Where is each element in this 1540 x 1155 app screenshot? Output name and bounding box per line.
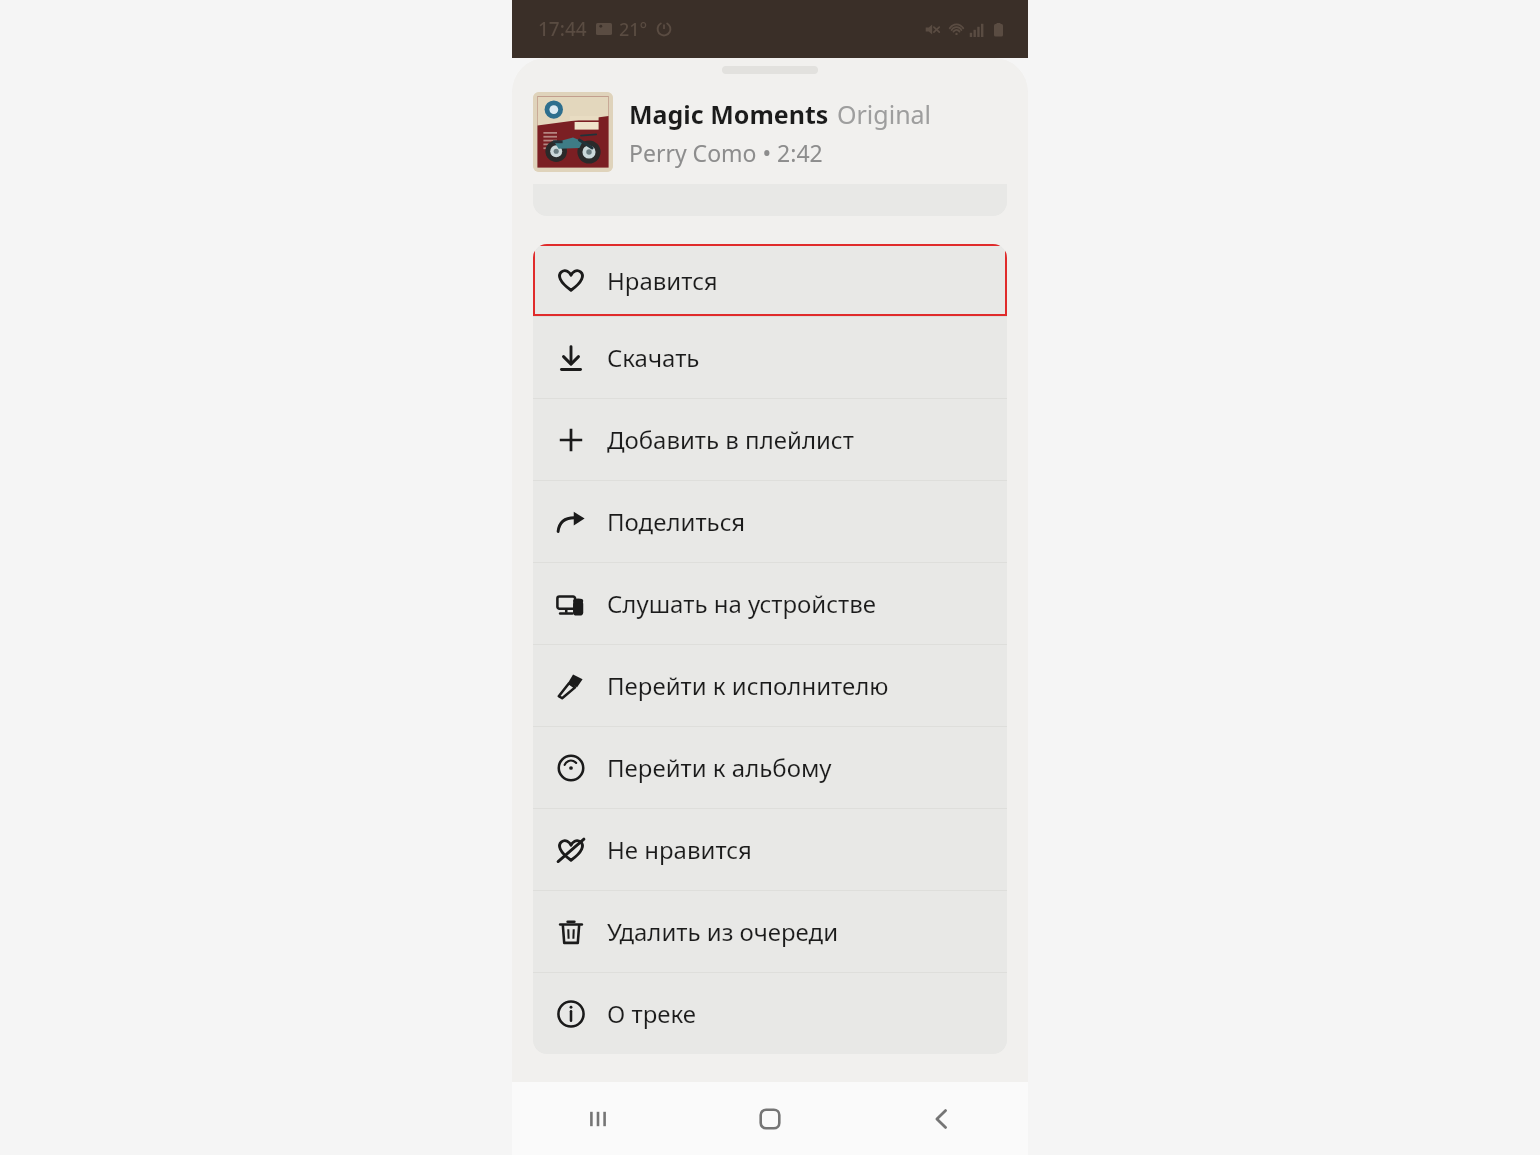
staticText: Magic Moments (629, 97, 829, 131)
staticText: Поделиться (607, 505, 746, 538)
button[interactable]: Скачать (533, 317, 1007, 398)
staticText: Перейти к исполнителю (607, 669, 889, 702)
staticText: 21° (619, 17, 648, 42)
button[interactable]: Поделиться (533, 481, 1007, 562)
staticText: Нравится (607, 264, 718, 297)
button[interactable]: Recents (512, 1082, 684, 1155)
staticText: О треке (607, 997, 696, 1030)
button[interactable]: Перейти к альбому (533, 727, 1007, 808)
staticText: Скачать (607, 341, 700, 374)
staticText: Original (837, 97, 932, 131)
staticText: Удалить из очереди (607, 915, 839, 948)
button[interactable]: Слушать на устройстве (533, 563, 1007, 644)
button[interactable]: О треке (533, 973, 1007, 1054)
button[interactable]: Перейти к исполнителю (533, 645, 1007, 726)
button[interactable]: Удалить из очереди (533, 891, 1007, 972)
staticText: Добавить в плейлист (607, 423, 854, 456)
staticText: Perry Como • 2:42 (629, 137, 823, 168)
staticText: Не нравится (607, 833, 752, 866)
button[interactable]: Добавить в плейлист (533, 399, 1007, 480)
staticText: Перейти к альбому (607, 751, 832, 784)
button[interactable]: Не нравится (533, 809, 1007, 890)
staticText: 17:44 (538, 16, 587, 42)
button[interactable]: Нравится (533, 244, 1007, 316)
button[interactable]: Back (856, 1082, 1028, 1155)
button[interactable]: Home (684, 1082, 856, 1155)
staticText: Слушать на устройстве (607, 587, 877, 620)
